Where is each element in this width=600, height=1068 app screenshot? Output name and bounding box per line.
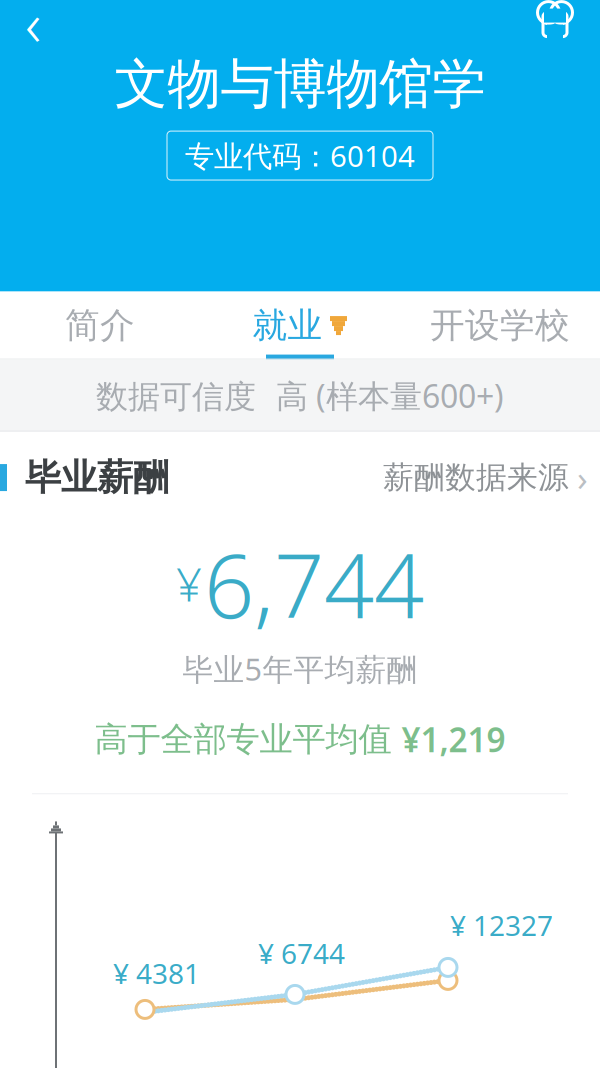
staticText: 数据可信度 高 (样本量600+) [96, 374, 504, 417]
staticText: ¥ 6744 [258, 934, 345, 972]
staticText: ¥ 4381 [113, 954, 200, 992]
staticText: 就业 [252, 304, 322, 347]
button[interactable]: Back [2, 0, 64, 54]
button[interactable]: 简介 [0, 292, 200, 360]
staticText: 薪酬数据来源 [383, 459, 569, 496]
staticText: 毕业5年平均薪酬 [182, 648, 417, 689]
staticText: 毕业薪酬 [25, 455, 169, 500]
button[interactable]: 开设学校 [400, 292, 600, 360]
staticText: 开设学校 [430, 304, 570, 347]
staticText: ‹ [25, 0, 41, 63]
staticText: ¥1,219 [401, 717, 505, 761]
staticText: ¥ [176, 554, 202, 614]
staticText: 文物与博物馆学 [114, 52, 485, 117]
staticText: 6,744 [204, 526, 424, 642]
button[interactable]: 薪酬数据来源 [383, 447, 600, 509]
staticText: › [577, 455, 588, 501]
button[interactable]: Favorite [524, 0, 586, 52]
button[interactable]: 就业 [200, 292, 400, 360]
staticText: ¥ 12327 [450, 906, 553, 944]
staticText: 专业代码：60104 [185, 136, 415, 175]
staticText: 高于全部专业平均值 [94, 719, 391, 760]
staticText: 简介 [65, 304, 135, 347]
